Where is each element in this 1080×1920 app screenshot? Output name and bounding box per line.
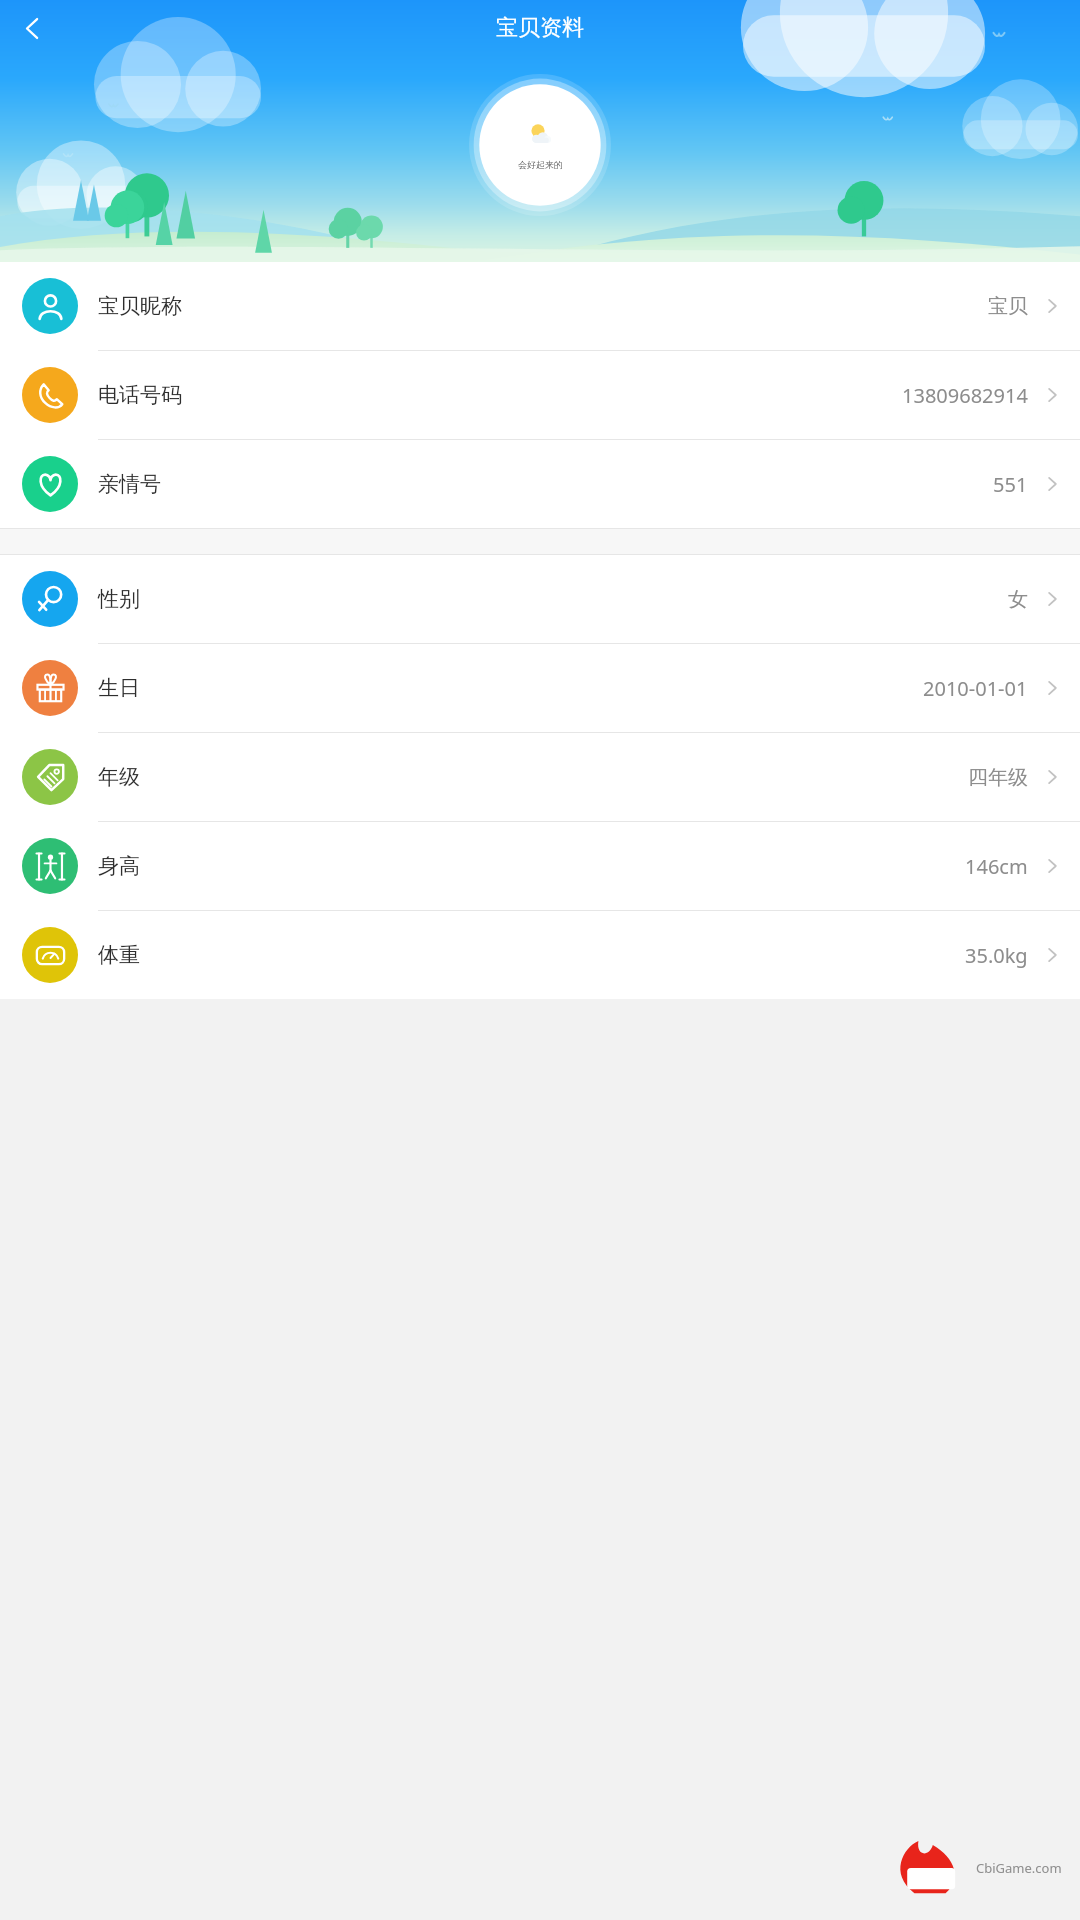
button[interactable]: 宝贝昵称 bbox=[0, 262, 1080, 351]
staticText: 四年级 bbox=[968, 765, 1028, 790]
staticText: 2010-01-01 bbox=[923, 675, 1028, 702]
staticText: 生日 bbox=[98, 675, 140, 701]
button[interactable]: 亲情号 bbox=[0, 440, 1080, 528]
button[interactable]: 体重 bbox=[0, 911, 1080, 999]
staticText: 体重 bbox=[98, 942, 140, 968]
button[interactable]: 电话号码 bbox=[0, 351, 1080, 440]
staticText: 13809682914 bbox=[902, 382, 1028, 409]
staticText: 女 bbox=[1008, 587, 1028, 612]
staticText: 性别 bbox=[98, 586, 140, 612]
staticText: 亲情号 bbox=[98, 471, 161, 497]
staticText: 会好起来的 bbox=[518, 159, 563, 170]
staticText: 35.0kg bbox=[965, 942, 1028, 969]
staticText: 年级 bbox=[98, 764, 140, 790]
staticText: 146cm bbox=[965, 853, 1028, 880]
button[interactable]: 年级 bbox=[0, 733, 1080, 822]
staticText: 宝贝昵称 bbox=[98, 293, 182, 319]
staticText: 电话号码 bbox=[98, 382, 182, 408]
button[interactable]: 身高 bbox=[0, 822, 1080, 911]
staticText: 宝贝资料 bbox=[496, 14, 584, 42]
button[interactable]: Back bbox=[6, 2, 58, 54]
staticText: CbiGame.com bbox=[976, 1859, 1062, 1877]
staticText: 551 bbox=[993, 471, 1028, 498]
button[interactable]: 性别 bbox=[0, 555, 1080, 644]
button[interactable]: 生日 bbox=[0, 644, 1080, 733]
staticText: 宝贝 bbox=[988, 294, 1028, 319]
staticText: 身高 bbox=[98, 853, 140, 879]
